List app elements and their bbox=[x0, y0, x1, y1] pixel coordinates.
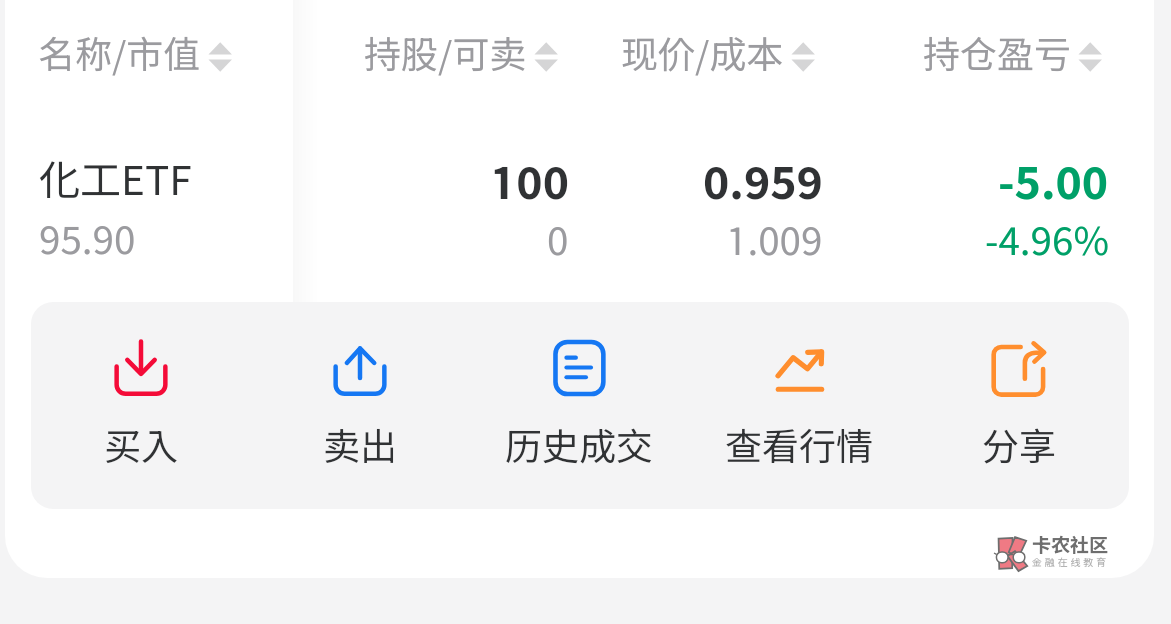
staticText: 卖出 bbox=[323, 424, 397, 468]
button[interactable]: 现价/成本 bbox=[621, 17, 818, 91]
button[interactable]: 持仓盈亏 bbox=[923, 17, 1105, 91]
button[interactable]: 持股/可卖 bbox=[364, 17, 561, 91]
staticText: -4.96% bbox=[985, 217, 1109, 263]
staticText: 0 bbox=[547, 217, 569, 263]
button[interactable]: 查看行情 bbox=[689, 302, 909, 509]
button[interactable]: 历史成交 bbox=[469, 302, 689, 509]
staticText: 买入 bbox=[104, 424, 178, 468]
button[interactable]: 分享 bbox=[909, 302, 1129, 509]
staticText: -5.00 bbox=[998, 155, 1109, 208]
staticText: 分享 bbox=[982, 424, 1056, 468]
staticText: 持股/可卖 bbox=[364, 32, 527, 76]
button[interactable]: 卖出 bbox=[250, 302, 469, 509]
button[interactable]: 名称/市值 bbox=[38, 17, 235, 91]
staticText: 0.959 bbox=[703, 155, 823, 208]
staticText: 金融在线教育 bbox=[1032, 556, 1109, 568]
staticText: 历史成交 bbox=[505, 424, 653, 468]
staticText: 95.90 bbox=[39, 216, 136, 262]
button[interactable]: 化工ETF bbox=[5, 118, 1154, 298]
staticText: 化工ETF bbox=[39, 155, 192, 203]
staticText: 名称/市值 bbox=[38, 32, 201, 76]
button[interactable]: 买入 bbox=[31, 302, 250, 509]
staticText: 100 bbox=[490, 155, 569, 208]
staticText: 查看行情 bbox=[725, 424, 873, 468]
staticText: 现价/成本 bbox=[621, 32, 784, 76]
staticText: 卡农社区 bbox=[1032, 534, 1109, 556]
staticText: 1.009 bbox=[726, 217, 823, 263]
staticText: 持仓盈亏 bbox=[923, 32, 1071, 76]
